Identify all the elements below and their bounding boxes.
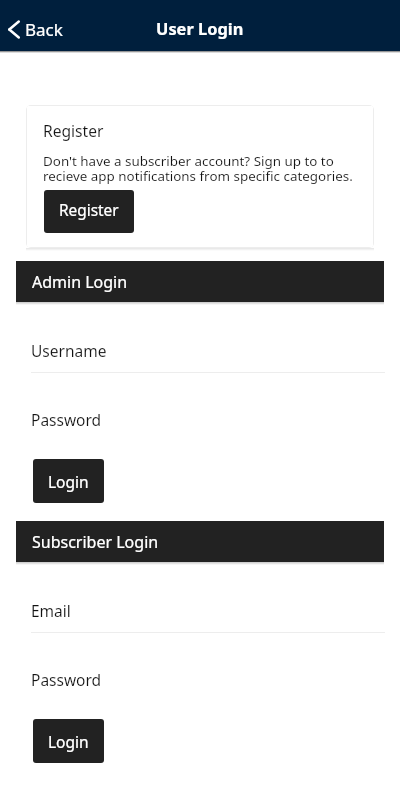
staticText: Password	[31, 409, 102, 430]
button[interactable]: Register	[44, 190, 134, 233]
staticText: Login	[48, 731, 89, 752]
staticText: Password	[31, 669, 102, 690]
button[interactable]: Login	[33, 719, 104, 763]
staticText: Subscriber Login	[32, 531, 159, 553]
staticText: User Login	[156, 17, 244, 39]
staticText: Register	[59, 200, 119, 221]
button[interactable]: Subscriber Login	[16, 521, 384, 562]
staticText: Don't have a subscriber account? Sign up…	[43, 152, 359, 184]
button[interactable]: Admin Login	[16, 261, 384, 302]
staticText: Email	[31, 600, 71, 621]
staticText: Back	[25, 18, 63, 41]
staticText: Register	[43, 120, 104, 141]
button[interactable]: Password	[0, 409, 400, 430]
button[interactable]: Back	[0, 16, 71, 43]
button[interactable]: Username	[0, 340, 400, 373]
button[interactable]: Password	[0, 669, 400, 690]
staticText: Login	[48, 471, 89, 492]
button[interactable]: Login	[33, 459, 104, 503]
staticText: Admin Login	[32, 271, 128, 293]
button[interactable]: Email	[0, 600, 400, 633]
staticText: Username	[31, 340, 107, 361]
